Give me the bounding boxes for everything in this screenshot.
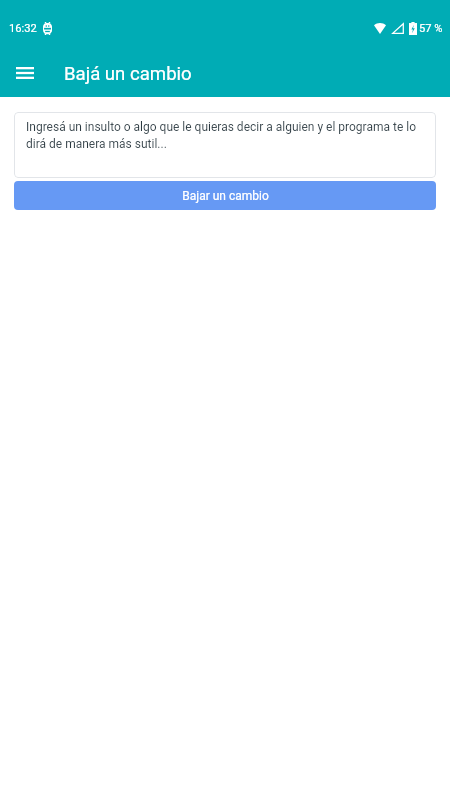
staticText: Ingresá un insulto o algo que le quieras…	[26, 120, 424, 151]
button[interactable]: Bajar un cambio	[14, 181, 436, 210]
button[interactable]: Open navigation menu	[7, 55, 42, 90]
staticText: 57 %	[419, 22, 443, 35]
staticText: Bajar un cambio	[182, 189, 269, 203]
staticText: 16:32	[9, 22, 37, 35]
staticText: Bajá un cambio	[64, 63, 192, 85]
button[interactable]: Ingresá un insulto o algo que le quieras…	[14, 112, 436, 178]
